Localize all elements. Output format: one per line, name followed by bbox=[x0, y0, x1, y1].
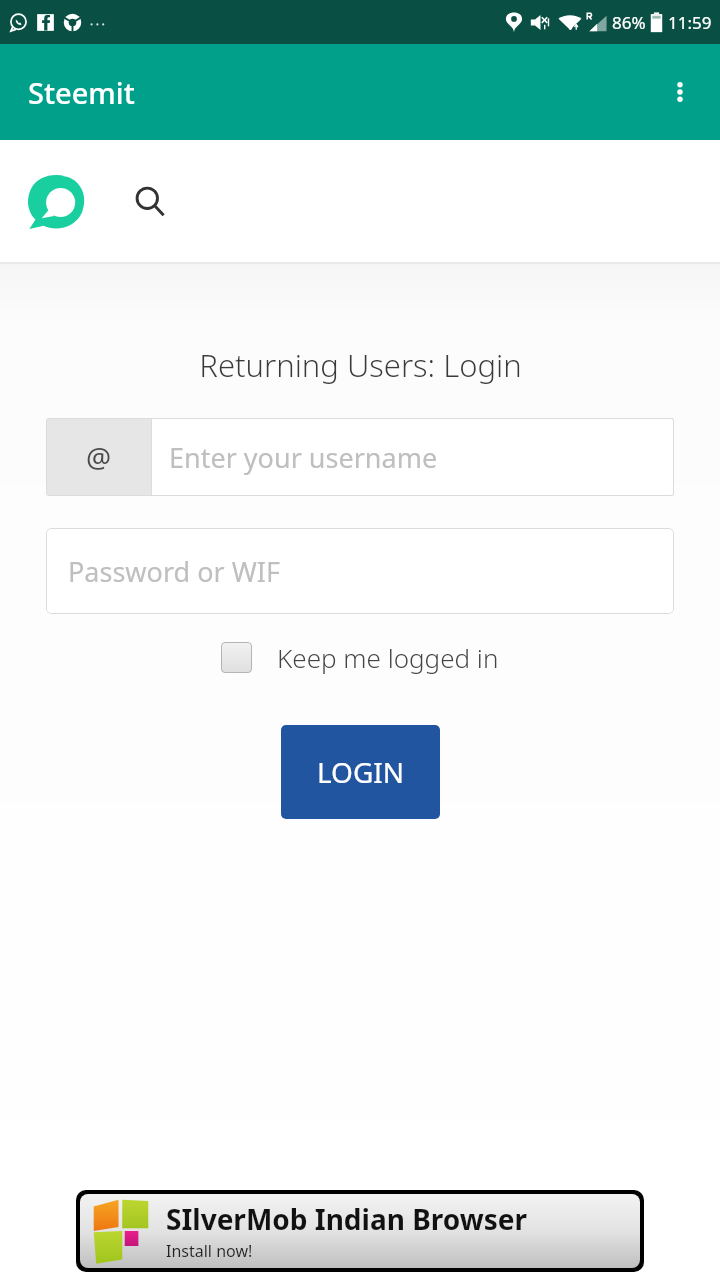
button[interactable]: LOGIN bbox=[281, 725, 440, 819]
staticText: Returning Users: Login bbox=[199, 344, 522, 386]
button[interactable]: Steemit home bbox=[18, 163, 94, 239]
staticText: Steemit bbox=[28, 73, 135, 112]
button[interactable]: Search bbox=[118, 169, 182, 233]
staticText: 86% bbox=[612, 11, 646, 34]
staticText: Install now! bbox=[166, 1240, 253, 1262]
button[interactable]: Keep me logged in bbox=[215, 636, 505, 679]
button[interactable]: SIlverMob Indian Browser bbox=[80, 1194, 640, 1268]
staticText: SIlverMob Indian Browser bbox=[166, 1200, 527, 1238]
staticText: 11:59 bbox=[668, 11, 712, 34]
button[interactable]: More options bbox=[652, 64, 708, 120]
staticText: Password or WIF bbox=[68, 553, 280, 590]
staticText: LOGIN bbox=[317, 753, 405, 791]
staticText: Keep me logged in bbox=[277, 640, 499, 675]
staticText: @ bbox=[86, 438, 112, 476]
button[interactable]: @ bbox=[46, 418, 674, 496]
button[interactable]: Password or WIF bbox=[46, 528, 674, 614]
staticText: Enter your username bbox=[169, 439, 438, 476]
